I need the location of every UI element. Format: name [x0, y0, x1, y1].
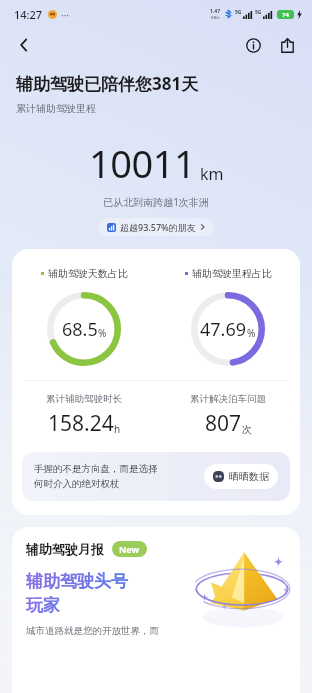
button[interactable]: 辅助驾驶月报	[12, 527, 300, 693]
staticText: 辅助驾驶天数占比	[48, 267, 128, 280]
staticText: 累计辅助驾驶时长	[46, 393, 122, 405]
staticText: ···	[61, 8, 70, 22]
staticText: 玩家	[26, 595, 60, 616]
staticText: 158.24	[48, 409, 114, 438]
staticText: 累计辅助驾驶里程	[16, 102, 96, 115]
staticText: 辅助驾驶头号	[26, 571, 128, 592]
staticText: 手握的不是方向盘，而是选择	[34, 463, 158, 475]
staticText: 城市道路就是您的开放世界，而	[26, 625, 159, 637]
staticText: 10011	[89, 137, 196, 189]
staticText: 5G	[235, 9, 242, 16]
staticText: 何时介入的绝对权杖	[34, 478, 120, 490]
staticText: km	[200, 163, 224, 185]
button[interactable]: Info	[238, 30, 268, 60]
staticText: 次	[242, 423, 252, 436]
button[interactable]: Back	[8, 29, 40, 61]
button[interactable]: Share	[272, 30, 302, 60]
button[interactable]: 晒晒数据	[204, 464, 278, 489]
staticText: %	[247, 326, 256, 340]
staticText: h	[114, 422, 121, 436]
staticText: %	[98, 326, 107, 340]
staticText: 14:27	[14, 7, 43, 22]
staticText: 辅助驾驶月报	[26, 541, 104, 557]
staticText: 68.5	[62, 317, 98, 342]
staticText: 累计解决泊车问题	[190, 393, 266, 405]
staticText: 74	[282, 11, 289, 19]
staticText: 晒晒数据	[229, 470, 269, 483]
staticText: 辅助驾驶里程占比	[192, 267, 272, 280]
button[interactable]: 超越93.57%的朋友	[99, 218, 214, 236]
staticText: 辅助驾驶已陪伴您381天	[16, 72, 199, 95]
staticText: 1.47	[210, 8, 220, 15]
staticText: 已从北到南跨越1次非洲	[0, 195, 312, 209]
staticText: 5G	[255, 9, 262, 16]
staticText: 47.69	[200, 317, 247, 342]
staticText: 807	[205, 409, 242, 438]
staticText: KB/s	[211, 15, 220, 20]
staticText: 超越93.57%的朋友	[120, 221, 196, 233]
staticText: New	[119, 543, 140, 555]
